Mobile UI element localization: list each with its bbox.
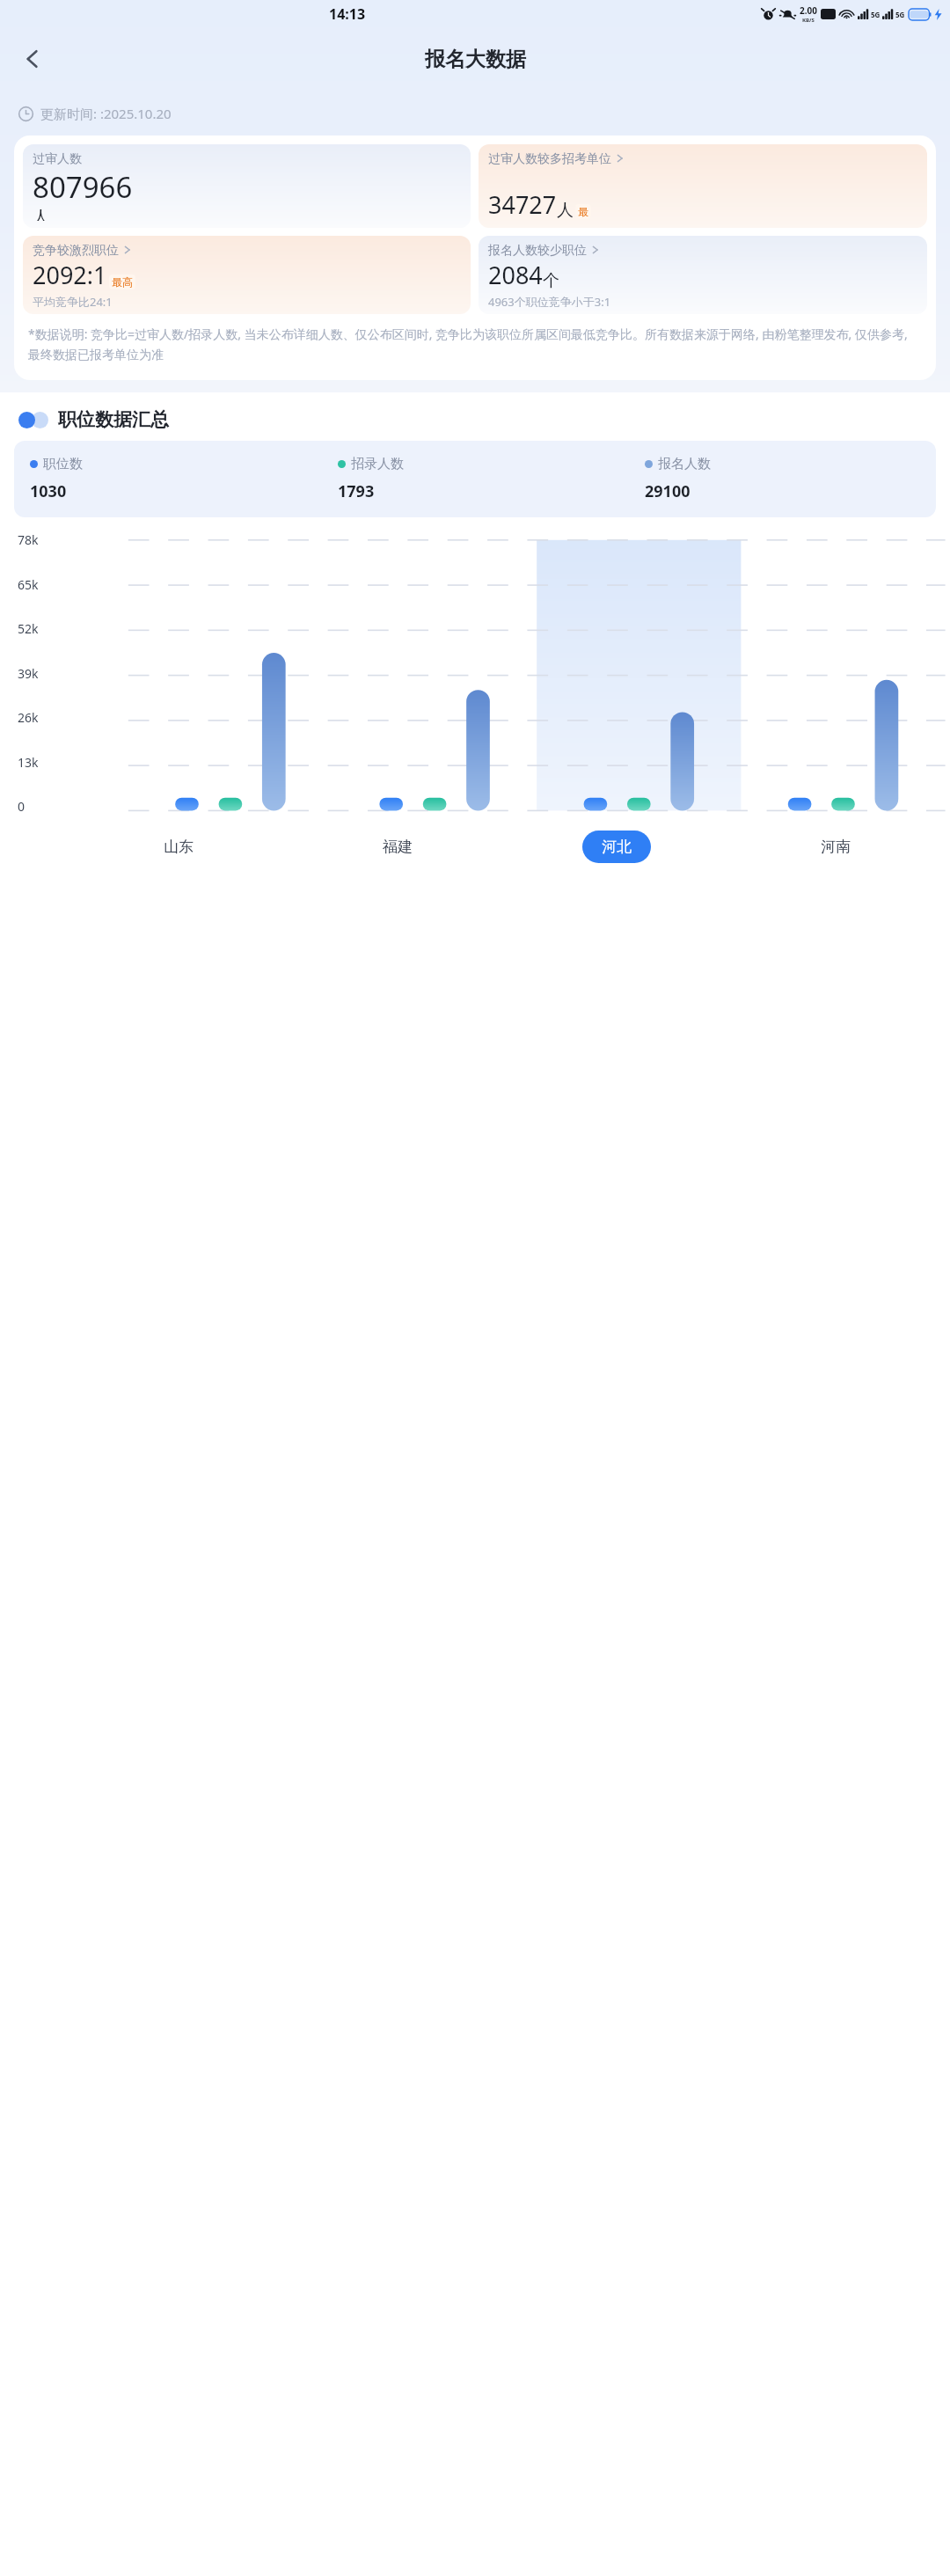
button[interactable]: 山东 [144, 831, 213, 863]
button[interactable]: 福建 [363, 831, 432, 863]
staticText: 山东 [164, 838, 194, 856]
staticText: 过审人数 [33, 151, 82, 167]
staticText: 14:13 [329, 4, 366, 24]
staticText: 报名大数据 [425, 47, 526, 72]
staticText: KB/S [802, 17, 815, 24]
button[interactable]: 河南 [801, 831, 870, 863]
staticText: 过审人数较多招考单位 [488, 151, 611, 167]
staticText: 平均竞争比24:1 [33, 294, 113, 307]
staticText: 65k [18, 576, 39, 593]
staticText: 2.00 [800, 4, 817, 17]
button[interactable]: 报名人数较少职位 [479, 236, 927, 314]
staticText: 1793 [338, 480, 375, 502]
staticText: 0 [18, 798, 26, 815]
staticText: 职位数据汇总 [58, 408, 169, 431]
staticText: 5G [871, 10, 881, 19]
staticText: 福建 [383, 838, 413, 856]
staticText: 职位数 [43, 456, 83, 472]
staticText: 34727 [488, 188, 557, 221]
staticText: 最 [578, 205, 588, 218]
staticText: 个 [543, 270, 559, 291]
button[interactable]: 过审人数较多招考单位 [479, 144, 927, 228]
button[interactable]: 过审人数 [23, 144, 471, 228]
staticText: 招录人数 [351, 456, 404, 472]
staticText: *数据说明: 竞争比=过审人数/招录人数, 当未公布详细人数、仅公布区间时, 竞… [28, 326, 922, 362]
staticText: 河北 [602, 838, 632, 856]
button[interactable]: Back [12, 39, 53, 79]
staticText: 2084 [488, 259, 543, 291]
staticText: 最高 [112, 275, 133, 289]
staticText: 人 [557, 200, 574, 221]
staticText: 39k [18, 665, 39, 682]
staticText: 2092:1 [33, 259, 107, 291]
staticText: 1030 [30, 480, 67, 502]
button[interactable]: 竞争较激烈职位 [23, 236, 471, 314]
staticText: 13k [18, 754, 39, 771]
staticText: 报名人数较少职位 [488, 243, 587, 259]
staticText: 更新时间: :2025.10.20 [40, 105, 172, 122]
staticText: 报名人数 [658, 456, 711, 472]
staticText: 河南 [821, 838, 851, 856]
staticText: 52k [18, 620, 39, 637]
staticText: 5G [895, 10, 905, 19]
button[interactable]: 河北 [582, 831, 651, 863]
staticText: 人 [33, 207, 49, 221]
staticText: 78k [18, 531, 39, 548]
staticText: 807966 [33, 167, 133, 207]
staticText: 竞争较激烈职位 [33, 243, 119, 259]
staticText: 4963个职位竞争小于3:1 [488, 294, 611, 307]
staticText: 29100 [645, 480, 691, 502]
staticText: 26k [18, 709, 39, 726]
